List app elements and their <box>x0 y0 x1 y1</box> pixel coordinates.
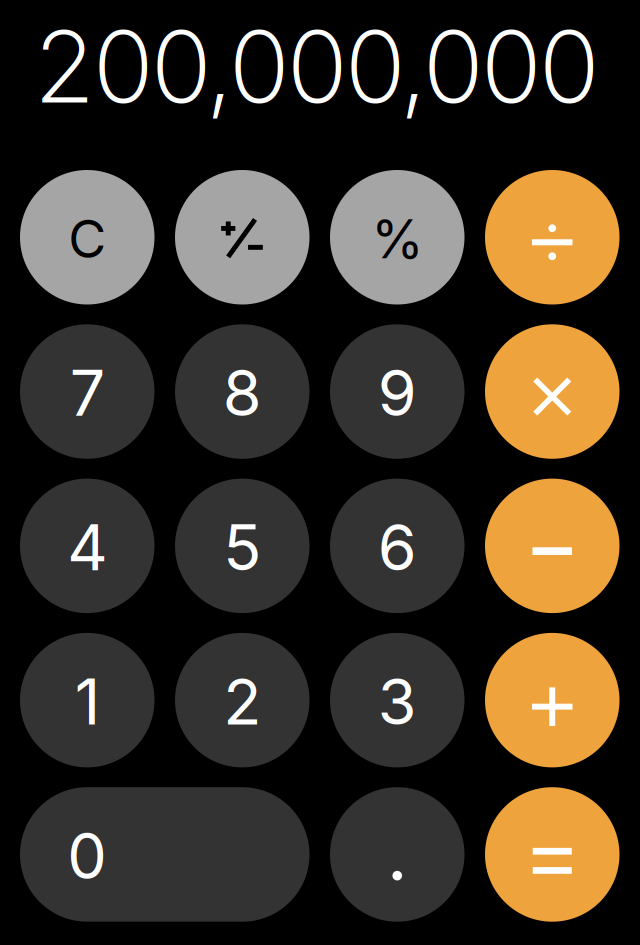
staticText: 9 <box>378 355 417 431</box>
button[interactable]: Equals <box>485 787 619 922</box>
button[interactable]: Plus minus <box>175 170 309 304</box>
button[interactable]: 9 <box>330 324 464 459</box>
staticText: 7 <box>70 355 105 431</box>
button[interactable]: 8 <box>175 324 309 459</box>
staticText: % <box>371 206 423 271</box>
staticText: 6 <box>378 509 417 585</box>
staticText: 3 <box>378 664 417 739</box>
button[interactable]: 4 <box>20 479 154 613</box>
button[interactable]: % <box>330 170 464 304</box>
button[interactable]: 6 <box>330 479 464 613</box>
button[interactable]: Add <box>485 633 619 767</box>
button[interactable]: 0 <box>20 787 309 922</box>
staticText: 1 <box>75 664 100 739</box>
button[interactable]: 3 <box>330 633 464 767</box>
staticText: C <box>68 207 106 270</box>
staticText: 200,000,000 <box>35 5 598 126</box>
button[interactable]: Divide <box>485 170 619 304</box>
button[interactable]: Multiply <box>485 324 619 459</box>
button[interactable]: 1 <box>20 633 154 767</box>
staticText: 0 <box>67 818 107 894</box>
button[interactable]: 2 <box>175 633 309 767</box>
button[interactable]: C <box>20 170 154 304</box>
button[interactable]: Subtract <box>485 479 619 613</box>
button[interactable]: Decimal point <box>330 787 464 922</box>
staticText: 4 <box>67 509 107 585</box>
staticText: 5 <box>223 509 261 585</box>
button[interactable]: 5 <box>175 479 309 613</box>
staticText: 2 <box>223 664 261 739</box>
button[interactable]: 7 <box>20 324 154 459</box>
staticText: 8 <box>223 355 262 431</box>
